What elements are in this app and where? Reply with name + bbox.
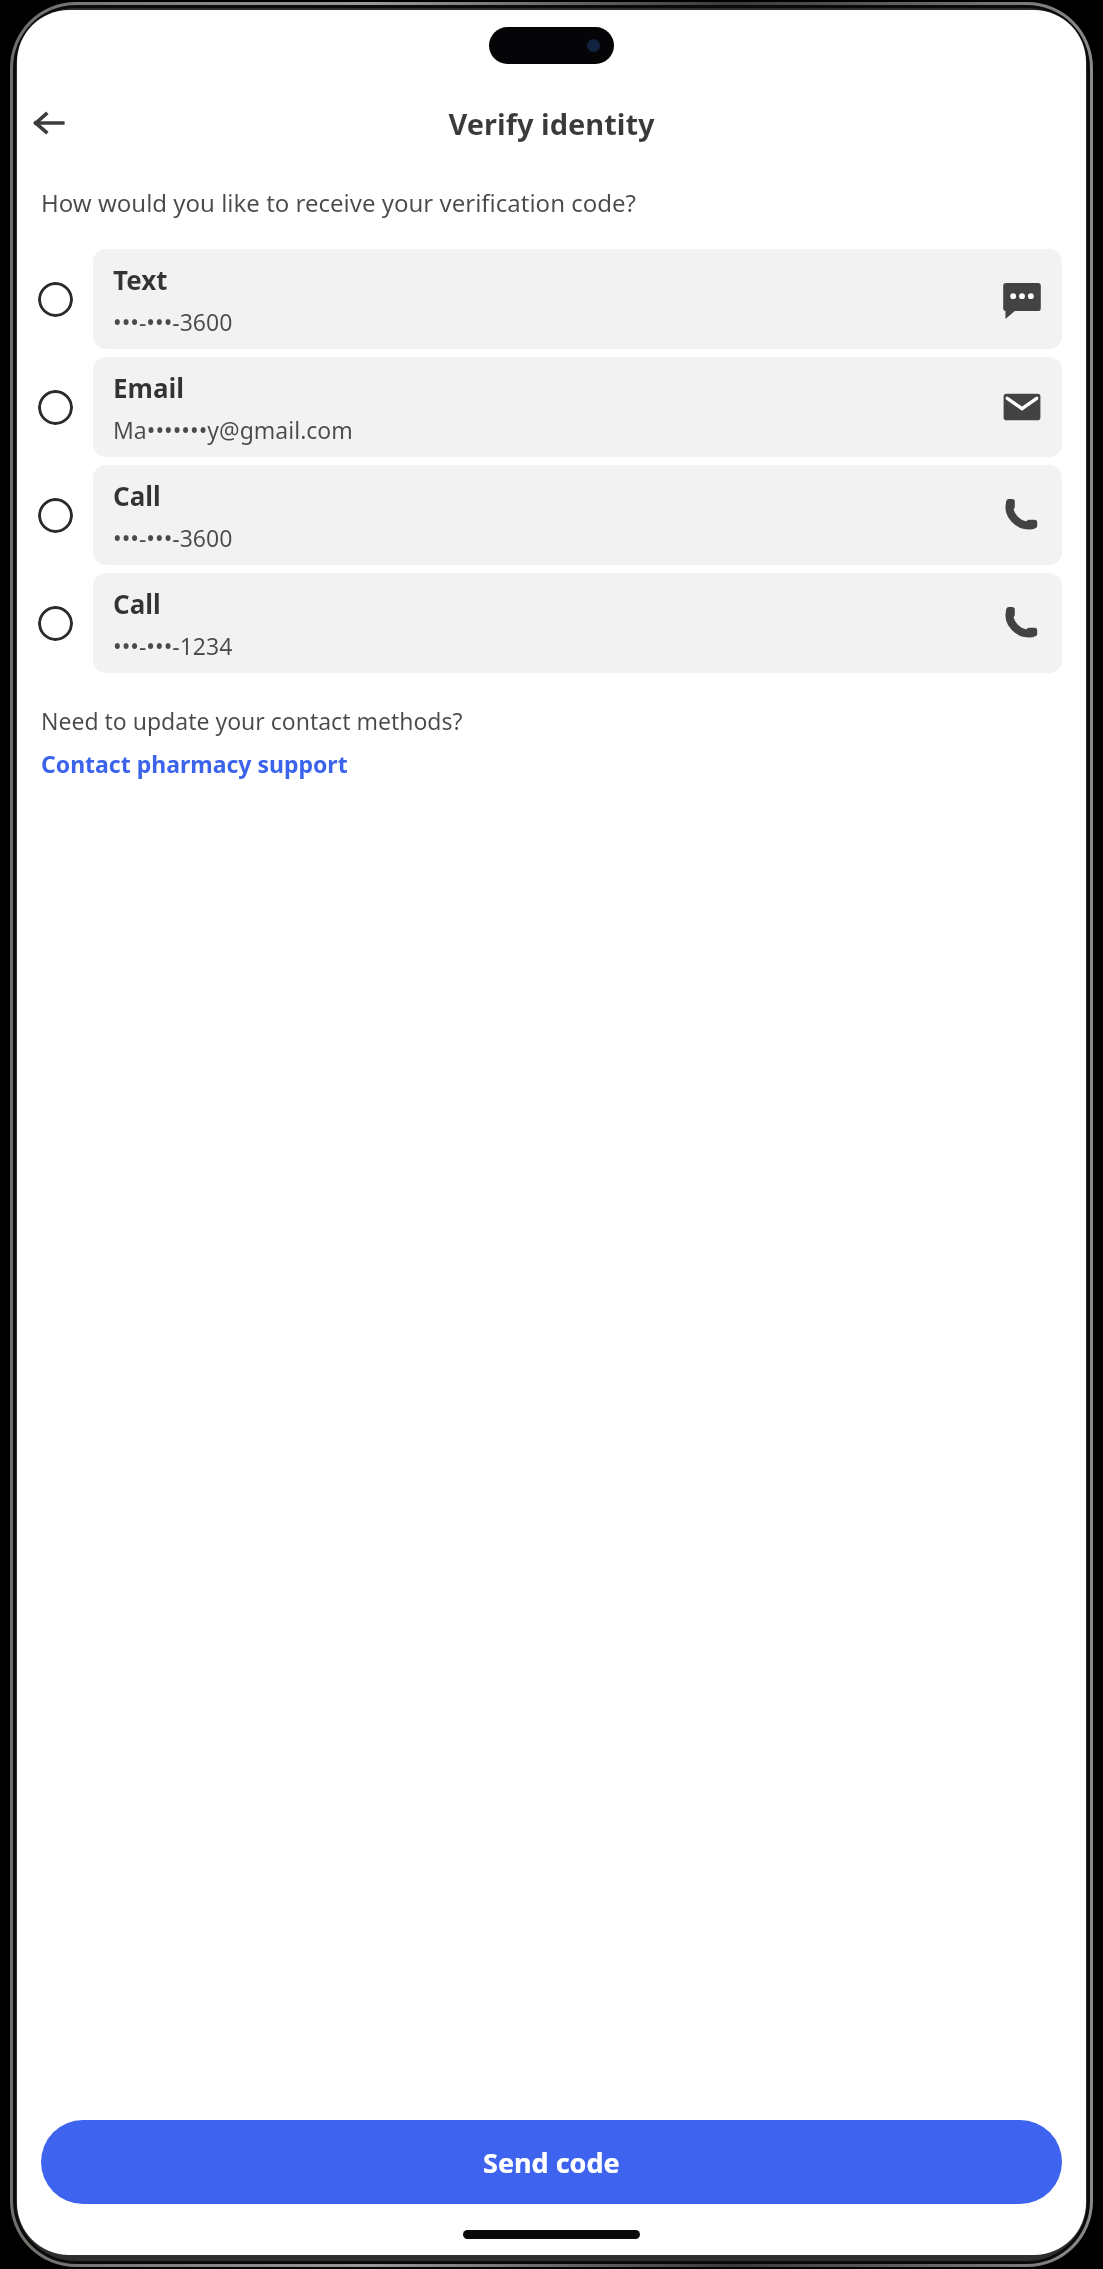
staticText: Email [113,370,185,405]
staticText: Need to update your contact methods? [41,705,463,736]
staticText: •••-•••-3600 [113,522,233,553]
button[interactable]: Send code [41,2120,1062,2204]
staticText: Ma•••••••y@gmail.com [113,414,353,445]
staticText: Send code [483,2144,620,2181]
button[interactable]: Back [23,97,75,149]
button[interactable]: Contact pharmacy support [41,748,348,779]
staticText: How would you like to receive your verif… [41,186,1040,219]
staticText: •••-•••-3600 [113,306,233,337]
staticText: Text [113,262,168,297]
staticText: Call [113,586,161,621]
button[interactable]: Call [17,465,1086,565]
button[interactable]: Call [17,573,1086,673]
button[interactable]: Text [17,249,1086,349]
staticText: Contact pharmacy support [41,748,348,779]
staticText: Call [113,478,161,513]
button[interactable]: Email [17,357,1086,457]
staticText: Verify identity [448,104,655,143]
staticText: •••-•••-1234 [113,630,233,661]
